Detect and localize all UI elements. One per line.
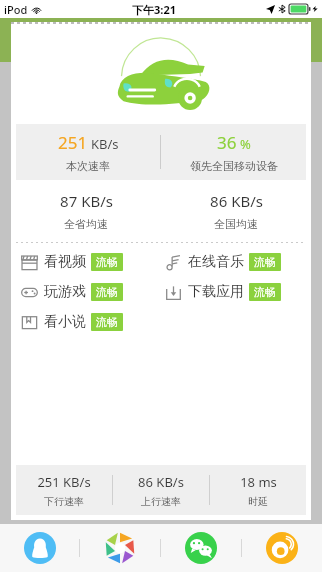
staticText: % [240, 135, 251, 153]
staticText: 本次速率 [66, 159, 110, 173]
staticText: 流畅 [96, 255, 118, 269]
staticText: 玩游戏 [44, 283, 86, 301]
other: Online music [165, 254, 182, 271]
other: Download apps [165, 284, 182, 301]
button[interactable]: Photos [80, 524, 160, 572]
button[interactable]: Play games [17, 283, 161, 301]
other: Video [21, 254, 38, 271]
staticText: 流畅 [254, 255, 276, 269]
staticText: 18 ms [240, 473, 277, 491]
staticText: 时延 [248, 495, 268, 508]
staticText: 下载应用 [188, 283, 244, 301]
staticText: 看视频 [44, 253, 86, 271]
button[interactable]: Video [17, 253, 161, 271]
button[interactable]: Read novels [17, 313, 161, 331]
staticText: 87 KB/s [60, 191, 113, 211]
staticText: 流畅 [96, 285, 118, 299]
staticText: 看小说 [44, 313, 86, 331]
staticText: 36 [217, 131, 237, 154]
staticText: 86 KB/s [138, 473, 184, 491]
button[interactable]: Weibo [242, 524, 322, 572]
staticText: 86 KB/s [210, 191, 263, 211]
staticText: 下行速率 [44, 495, 84, 508]
staticText: 上行速率 [141, 495, 181, 508]
staticText: 下午3:21 [132, 2, 176, 17]
button[interactable]: Download apps [161, 283, 305, 301]
staticText: 领先全国移动设备 [190, 159, 278, 173]
staticText: 全省均速 [64, 217, 108, 231]
other: Read novels [21, 314, 38, 331]
staticText: 在线音乐 [188, 253, 244, 271]
staticText: KB/s [91, 135, 119, 153]
staticText: 流畅 [96, 315, 118, 329]
button[interactable]: QQ [0, 524, 79, 572]
staticText: 流畅 [254, 285, 276, 299]
button[interactable]: Online music [161, 253, 305, 271]
staticText: 251 [58, 131, 88, 154]
button[interactable]: WeChat [161, 524, 241, 572]
staticText: iPod [4, 2, 28, 17]
staticText: 全国均速 [214, 217, 258, 231]
staticText: 251 KB/s [37, 473, 91, 491]
other: Play games [21, 284, 38, 301]
